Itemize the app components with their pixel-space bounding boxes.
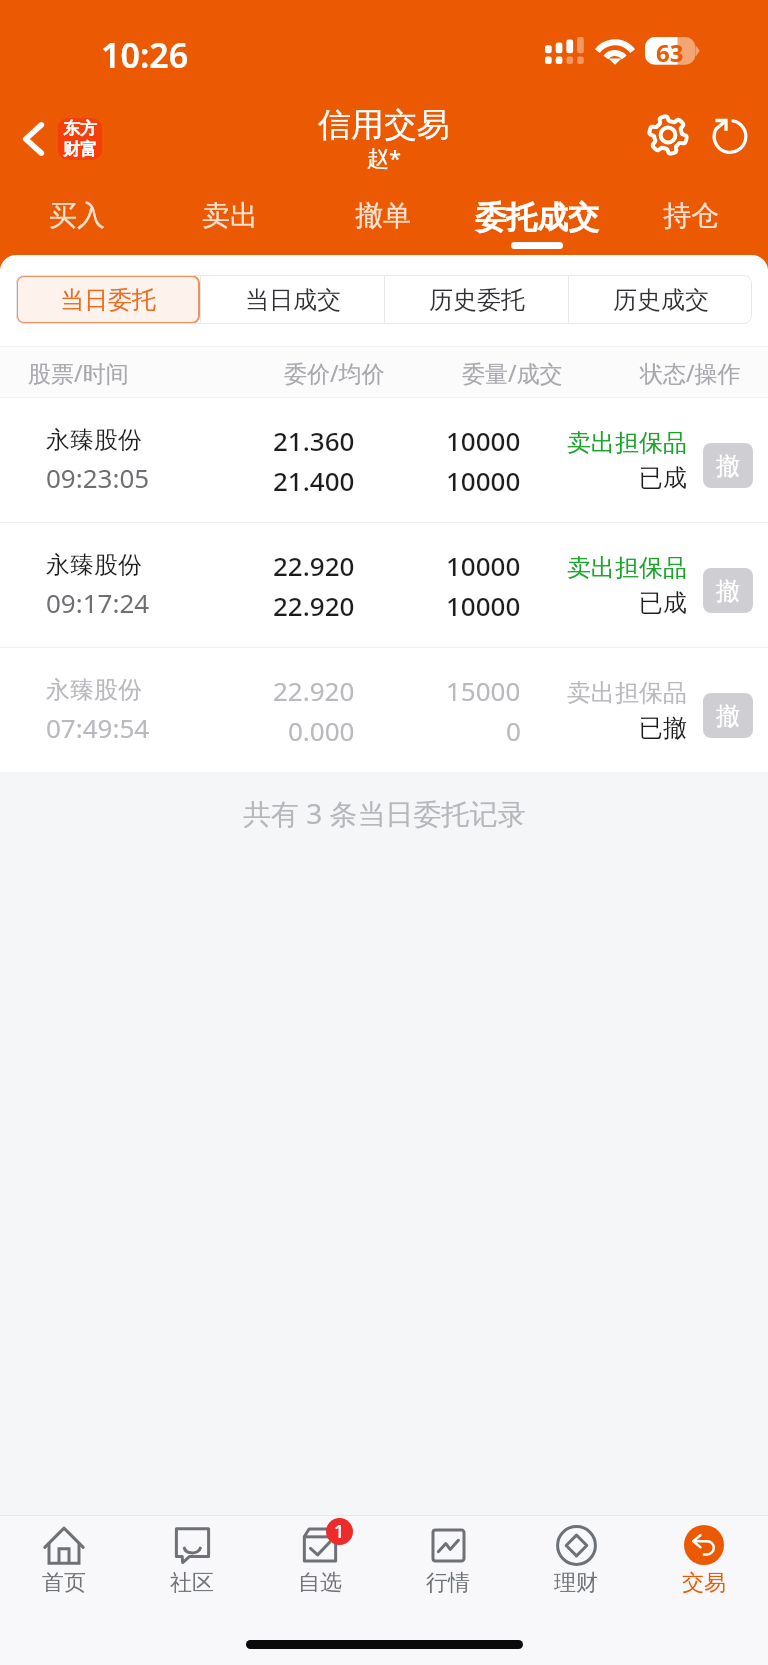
staticText: 09:17:24 — [46, 585, 150, 620]
button[interactable]: 历史成交 — [569, 275, 752, 324]
staticText: 行情 — [426, 1569, 470, 1597]
staticText: 永臻股份 — [46, 675, 142, 705]
staticText: 首页 — [42, 1569, 86, 1597]
staticText: 委量/成交 — [462, 357, 563, 388]
staticText: 已成 — [639, 588, 687, 618]
staticText: 撤 — [716, 576, 740, 606]
staticText: 委托成交 — [475, 198, 599, 237]
staticText: 持仓 — [663, 198, 719, 233]
staticText: 10000 — [446, 463, 521, 498]
button[interactable]: 交易 — [640, 1516, 768, 1631]
staticText: 1 — [334, 1519, 345, 1544]
button[interactable]: 撤单 — [306, 185, 460, 255]
staticText: 自选 — [298, 1569, 342, 1597]
staticText: 信用交易 — [318, 104, 450, 146]
staticText: 10:26 — [101, 32, 189, 78]
staticText: 股票/时间 — [28, 357, 129, 388]
staticText: 撤 — [716, 451, 740, 481]
staticText: 卖出担保品 — [567, 678, 687, 708]
button[interactable]: 当日委托 — [16, 275, 200, 324]
staticText: 10000 — [446, 588, 521, 623]
button[interactable]: Settings — [637, 104, 699, 166]
staticText: 07:49:54 — [46, 710, 150, 745]
staticText: 东方 — [63, 118, 97, 139]
button[interactable]: 历史委托 — [385, 275, 568, 324]
staticText: 当日委托 — [60, 285, 156, 315]
staticText: 共有 3 条当日委托记录 — [243, 794, 526, 832]
staticText: 09:23:05 — [46, 460, 150, 495]
button[interactable]: 委托成交 — [460, 185, 614, 255]
button[interactable]: 永臻股份 — [0, 648, 768, 772]
staticText: 21.400 — [273, 463, 355, 498]
staticText: 10000 — [446, 548, 521, 583]
button[interactable]: Refresh — [699, 104, 761, 166]
button[interactable]: Back — [0, 110, 112, 168]
staticText: 撤 — [716, 701, 740, 731]
staticText: 已成 — [639, 463, 687, 493]
staticText: 历史委托 — [429, 285, 525, 315]
staticText: 赵* — [367, 142, 402, 172]
staticText: 状态/操作 — [640, 357, 741, 388]
staticText: 22.920 — [273, 673, 355, 708]
button[interactable]: 首页 — [0, 1516, 128, 1631]
staticText: 买入 — [49, 198, 105, 233]
staticText: 0 — [506, 713, 521, 748]
staticText: 撤单 — [355, 198, 411, 233]
button[interactable]: 社区 — [128, 1516, 256, 1631]
staticText: 卖出担保品 — [567, 428, 687, 458]
staticText: 22.920 — [273, 588, 355, 623]
button[interactable]: 行情 — [384, 1516, 512, 1631]
staticText: 已撤 — [639, 713, 687, 743]
staticText: 当日成交 — [245, 285, 341, 315]
button[interactable]: 撤单 — [703, 443, 753, 488]
staticText: 63 — [656, 36, 684, 64]
staticText: 财富 — [63, 139, 97, 160]
button[interactable]: 当日成交 — [201, 275, 384, 324]
button[interactable]: 撤单 — [703, 693, 753, 738]
button[interactable]: 卖出 — [153, 185, 306, 255]
button[interactable]: 买入 — [0, 185, 153, 255]
staticText: 永臻股份 — [46, 550, 142, 580]
staticText: 理财 — [554, 1569, 598, 1597]
staticText: 15000 — [446, 673, 521, 708]
staticText: 卖出 — [202, 198, 258, 233]
staticText: 历史成交 — [613, 285, 709, 315]
staticText: 22.920 — [273, 548, 355, 583]
button[interactable]: 永臻股份 — [0, 523, 768, 647]
staticText: 交易 — [682, 1569, 726, 1597]
staticText: 21.360 — [273, 423, 355, 458]
button[interactable]: 持仓 — [614, 185, 768, 255]
staticText: 社区 — [170, 1569, 214, 1597]
staticText: 永臻股份 — [46, 425, 142, 455]
button[interactable]: 理财 — [512, 1516, 640, 1631]
button[interactable]: 撤单 — [703, 568, 753, 613]
staticText: 委价/均价 — [284, 357, 385, 388]
button[interactable]: 永臻股份 — [0, 398, 768, 522]
staticText: 卖出担保品 — [567, 553, 687, 583]
button[interactable]: 1 — [256, 1516, 384, 1631]
staticText: 0.000 — [288, 713, 355, 748]
staticText: 10000 — [446, 423, 521, 458]
